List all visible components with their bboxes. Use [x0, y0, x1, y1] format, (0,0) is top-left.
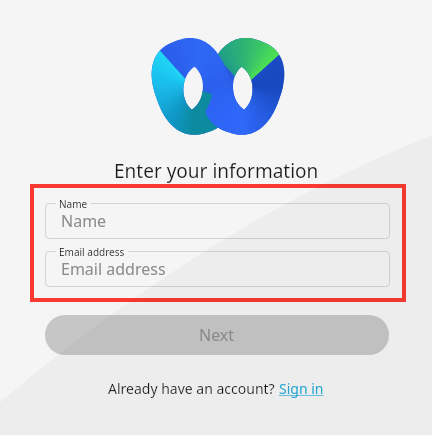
- staticText: Name: [61, 210, 107, 232]
- button[interactable]: Sign in: [279, 379, 324, 398]
- staticText: Sign in: [279, 379, 324, 398]
- staticText: Enter your information: [114, 158, 319, 184]
- staticText: Email address: [61, 258, 166, 280]
- staticText: Already have an account?: [108, 379, 279, 398]
- button[interactable]: Name: [45, 203, 390, 239]
- button[interactable]: Next: [45, 315, 389, 355]
- staticText: Name: [59, 197, 88, 211]
- staticText: Email address: [59, 245, 125, 259]
- button[interactable]: Email address: [45, 251, 390, 287]
- staticText: Next: [199, 324, 235, 346]
